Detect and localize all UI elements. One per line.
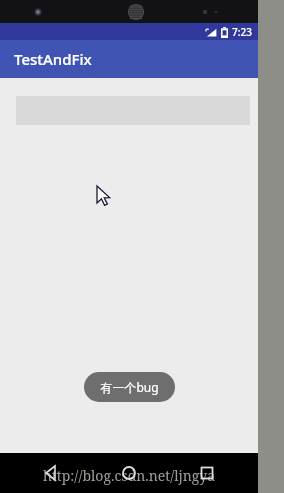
staticText: TestAndFix [14,49,92,69]
button[interactable]: Home [118,462,140,484]
button[interactable]: Recents [196,462,218,484]
button[interactable]: Back [40,462,62,484]
staticText: http://blog.csdn.net/ljngya [43,466,216,485]
button[interactable]: 有一个bug [84,372,175,402]
staticText: 有一个bug [100,379,159,395]
button[interactable]: TestAndFix [0,40,258,78]
staticText: 7:23 [232,25,252,39]
